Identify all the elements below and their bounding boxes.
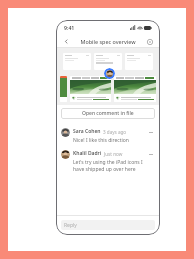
button[interactable]: More options <box>147 150 155 158</box>
staticText: Nice! I like this direction <box>73 137 129 144</box>
staticText: Mobile spec overview <box>80 38 136 45</box>
button[interactable]: Khalil Dadri <box>57 147 159 176</box>
button[interactable]: Open comment in file <box>61 108 155 119</box>
staticText: Just now <box>104 151 123 157</box>
staticText: Sara Cohen <box>73 128 101 135</box>
button[interactable]: Settings <box>144 36 155 47</box>
button[interactable]: More options <box>147 128 155 136</box>
staticText: Reply <box>64 222 77 229</box>
button[interactable]: Sara Cohen <box>57 125 159 147</box>
staticText: 3 days ago <box>103 129 127 135</box>
staticText: Let's try using the iPad icons I have sh… <box>73 159 145 173</box>
button[interactable]: Collaborator <box>104 68 115 79</box>
button[interactable]: Back <box>61 36 72 47</box>
staticText: Open comment in file <box>82 110 134 117</box>
staticText: Khalil Dadri <box>73 150 102 157</box>
staticText: 9:41 <box>64 24 75 31</box>
button[interactable]: Reply <box>61 220 155 230</box>
